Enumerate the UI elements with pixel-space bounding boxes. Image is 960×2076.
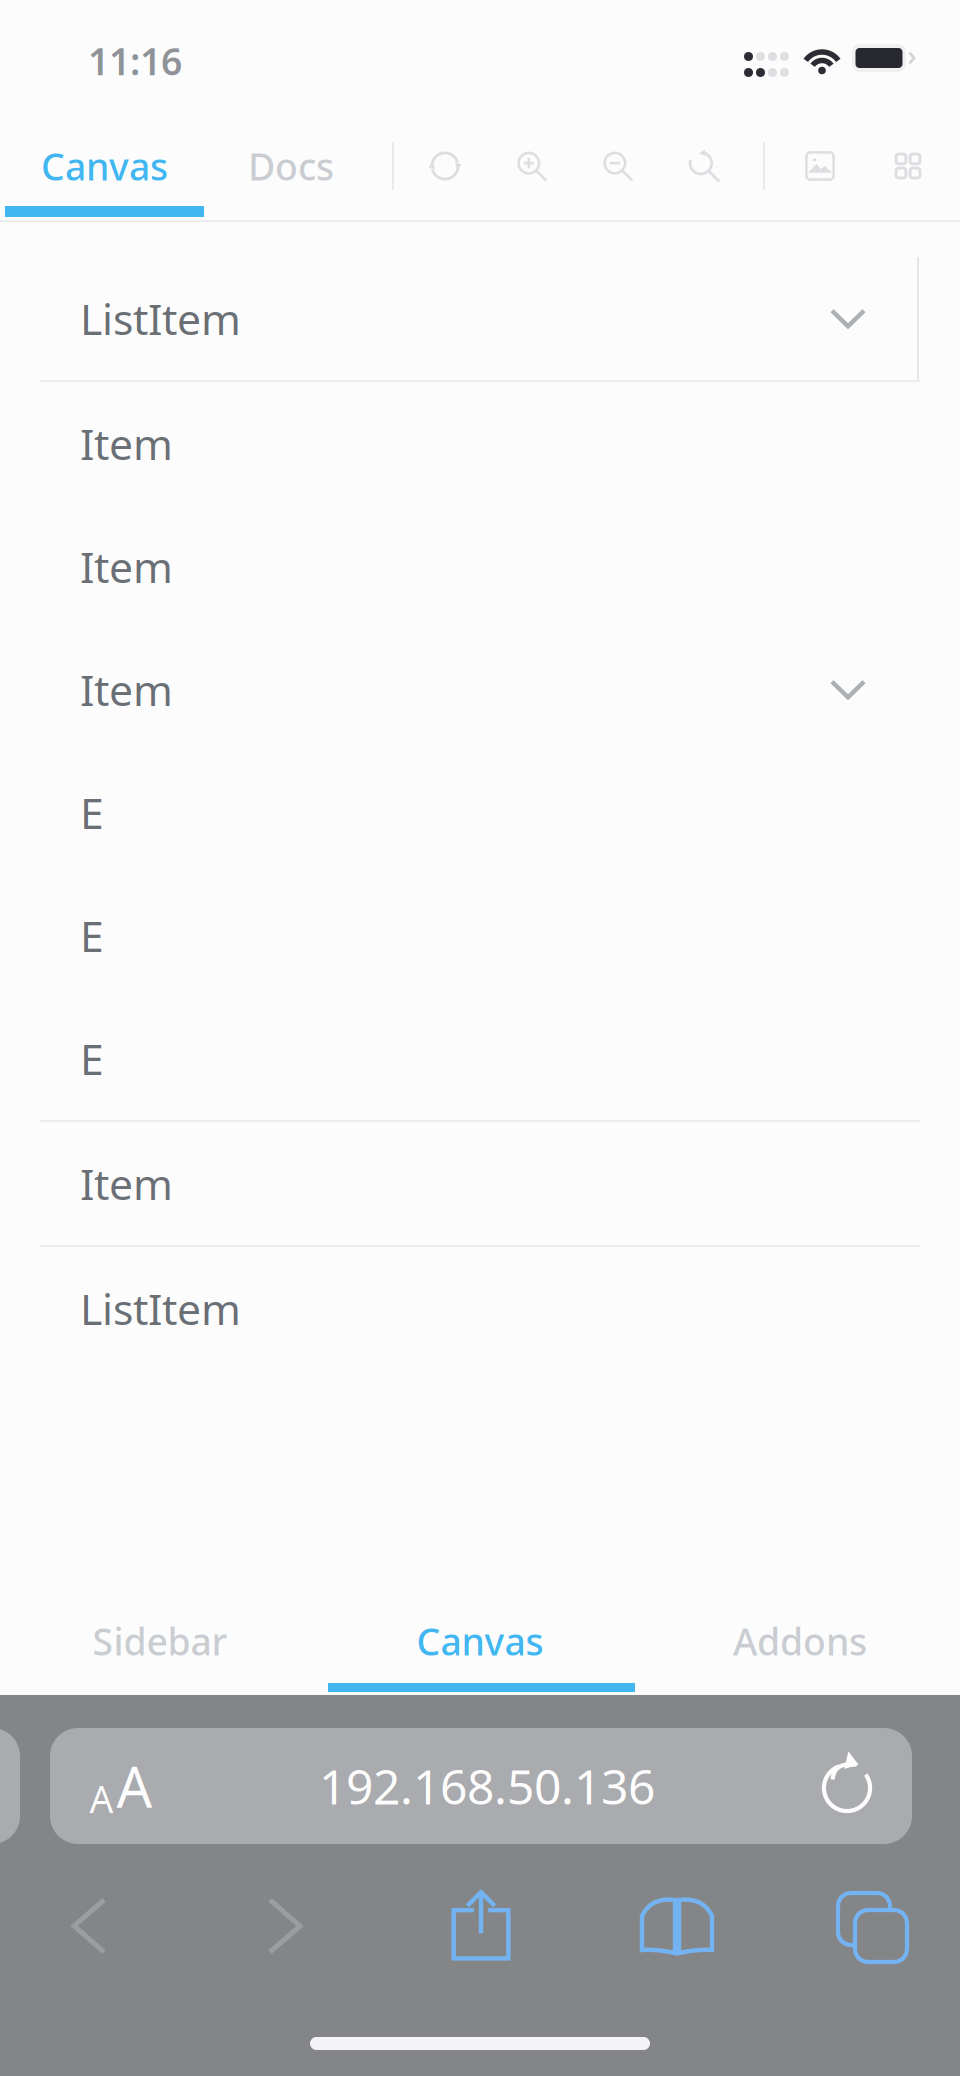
button[interactable]: E	[0, 997, 960, 1120]
button[interactable]: Reset zoom	[660, 126, 746, 206]
button[interactable]: Item	[0, 628, 960, 751]
staticText: Docs	[248, 141, 334, 191]
staticText: A	[89, 1774, 113, 1823]
staticText: Item	[80, 538, 173, 595]
button[interactable]: Item	[0, 1122, 960, 1245]
staticText: E	[80, 907, 104, 964]
staticText: Addons	[733, 1616, 867, 1666]
staticText: A	[116, 1749, 152, 1823]
button[interactable]: Zoom out	[574, 126, 660, 206]
staticText: Canvas	[416, 1616, 543, 1666]
staticText: Item	[80, 661, 173, 718]
button[interactable]: ListItem	[0, 257, 960, 380]
button[interactable]: Docs	[209, 126, 373, 206]
button[interactable]: Item	[0, 505, 960, 628]
staticText: ListItem	[80, 290, 241, 347]
button[interactable]: Sidebar	[0, 1585, 320, 1697]
button[interactable]: Components	[865, 126, 951, 206]
button[interactable]: ListItem	[0, 1247, 960, 1370]
button[interactable]: E	[0, 751, 960, 874]
button[interactable]: Tabs	[814, 1874, 932, 1978]
button[interactable]: Bookmarks	[618, 1874, 736, 1978]
button[interactable]: Item	[0, 382, 960, 505]
button[interactable]: Screenshot	[777, 126, 863, 206]
button[interactable]: Share	[422, 1874, 540, 1978]
button[interactable]: Refresh	[402, 126, 488, 206]
button[interactable]: Addons	[640, 1585, 960, 1697]
staticText: ListItem	[80, 1280, 241, 1337]
button[interactable]: E	[0, 874, 960, 997]
staticText: E	[80, 1030, 104, 1087]
button[interactable]: Canvas	[0, 126, 209, 206]
staticText: Item	[80, 1155, 173, 1212]
button[interactable]: Zoom in	[488, 126, 574, 206]
button[interactable]: Forward	[226, 1874, 344, 1978]
staticText: 192.168.50.136	[319, 1754, 655, 1818]
button[interactable]: Canvas	[320, 1585, 640, 1697]
staticText: Canvas	[41, 141, 168, 191]
staticText: 11:16	[88, 36, 182, 86]
button[interactable]: Page settings	[50, 1728, 192, 1844]
button[interactable]: Reload	[782, 1728, 912, 1844]
staticText: E	[80, 784, 104, 841]
button[interactable]: Back	[30, 1874, 148, 1978]
staticText: Sidebar	[92, 1616, 227, 1666]
staticText: Item	[80, 415, 173, 472]
